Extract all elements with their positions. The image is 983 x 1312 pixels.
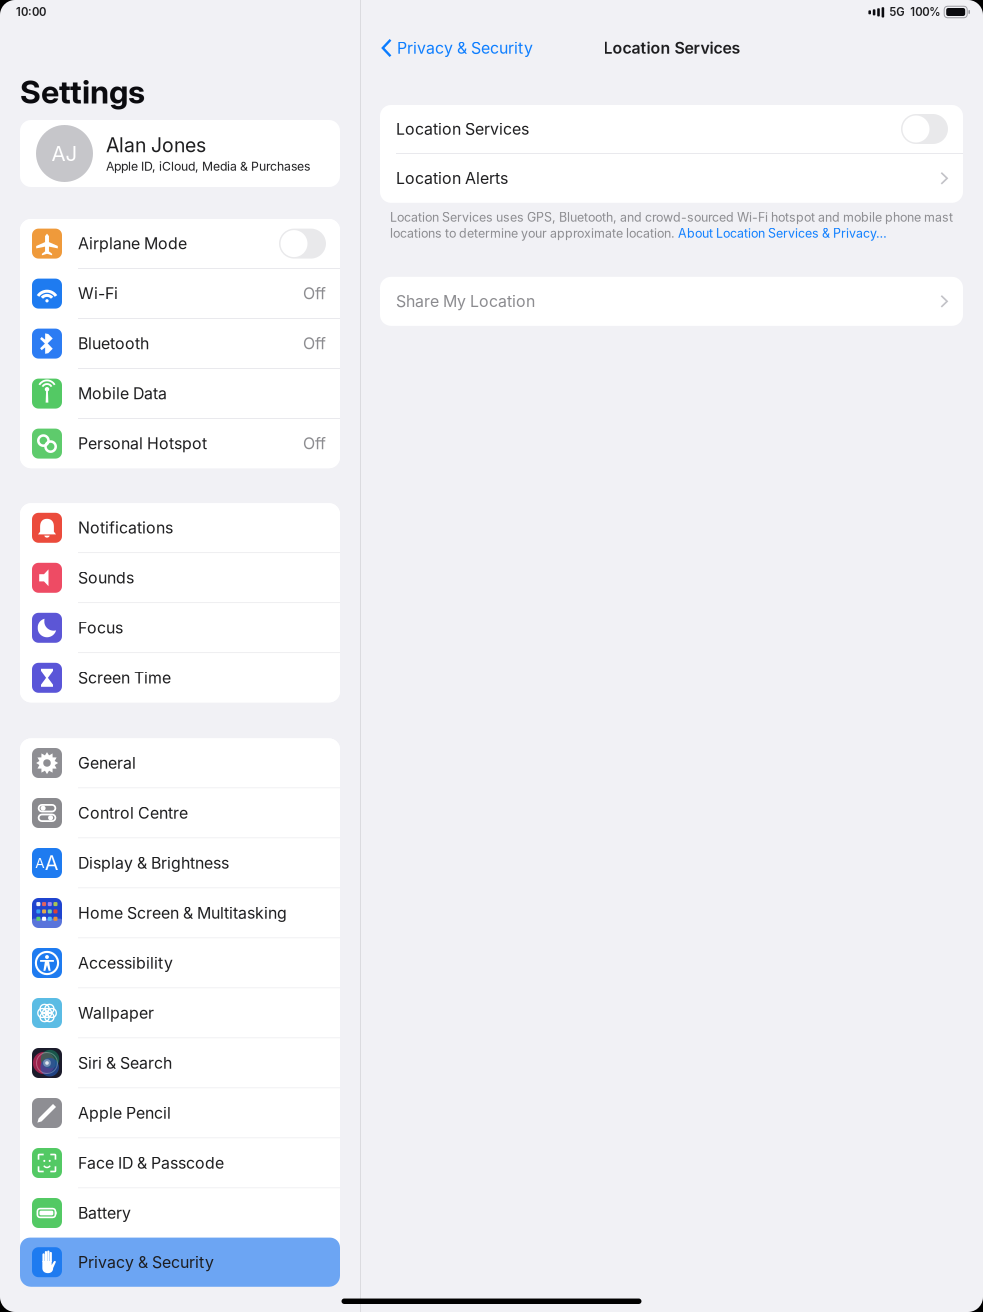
staticText: Location Services — [396, 119, 529, 139]
staticText: Focus — [78, 618, 123, 637]
button[interactable]: Location Alerts — [380, 154, 963, 203]
staticText: Display & Brightness — [78, 853, 229, 873]
staticText: Accessibility — [78, 953, 173, 973]
staticText: Bluetooth — [78, 334, 149, 353]
button[interactable]: Privacy & Security — [20, 1238, 340, 1287]
staticText: 10:00 — [16, 5, 46, 19]
staticText: A — [35, 855, 44, 871]
button[interactable]: Focus — [20, 603, 340, 652]
staticText: Battery — [78, 1203, 131, 1223]
staticText: Off — [303, 334, 326, 353]
staticText: Privacy & Security — [397, 38, 533, 58]
staticText: Location Services uses GPS, Bluetooth, a… — [390, 210, 953, 225]
button[interactable]: Wi-Fi — [20, 269, 340, 318]
staticText: Control Centre — [78, 803, 188, 823]
staticText: Location Alerts — [396, 169, 508, 188]
button[interactable]: Home Screen & Multitasking — [20, 888, 340, 938]
staticText: Sounds — [78, 568, 134, 587]
button[interactable]: Personal Hotspot — [20, 419, 340, 468]
button[interactable]: Airplane Mode — [20, 219, 340, 268]
button[interactable]: Apple Pencil — [20, 1088, 340, 1138]
button[interactable]: Sounds — [20, 553, 340, 602]
staticText: Wi-Fi — [78, 284, 118, 303]
staticText: A — [45, 851, 59, 875]
button[interactable]: Screen Time — [20, 653, 340, 702]
staticText: Home Screen & Multitasking — [78, 903, 287, 923]
button[interactable]: General — [20, 738, 340, 788]
staticText: Alan Jones — [106, 133, 206, 157]
button[interactable]: Bluetooth — [20, 319, 340, 368]
staticText: Airplane Mode — [78, 234, 187, 253]
button[interactable]: Privacy & Security — [377, 28, 537, 68]
staticText: General — [78, 753, 136, 773]
staticText: Settings — [20, 73, 145, 111]
staticText: Face ID & Passcode — [78, 1153, 224, 1173]
staticText: locations to determine your approximate … — [390, 226, 678, 241]
button[interactable]: Siri & Search — [20, 1038, 340, 1088]
staticText: Screen Time — [78, 668, 171, 687]
button[interactable]: Wallpaper — [20, 988, 340, 1038]
button[interactable]: Accessibility — [20, 938, 340, 988]
button[interactable]: Mobile Data — [20, 369, 340, 418]
button[interactable]: Notifications — [20, 503, 340, 552]
staticText: Apple Pencil — [78, 1103, 171, 1123]
staticText: 100% — [910, 5, 940, 19]
staticText: Off — [303, 284, 326, 303]
button[interactable]: Share My Location — [380, 277, 963, 326]
button[interactable]: AJ — [20, 120, 340, 187]
staticText: Personal Hotspot — [78, 434, 207, 453]
button[interactable]: About Location Services & Privacy… — [678, 226, 887, 241]
staticText: 5G — [889, 5, 904, 19]
staticText: Apple ID, iCloud, Media & Purchases — [106, 159, 310, 174]
button[interactable]: A — [20, 838, 340, 888]
staticText: AJ — [51, 141, 77, 166]
staticText: Siri & Search — [78, 1053, 172, 1073]
staticText: Notifications — [78, 518, 173, 537]
button[interactable]: Face ID & Passcode — [20, 1138, 340, 1188]
button[interactable]: Battery — [20, 1188, 340, 1238]
staticText: Share My Location — [396, 292, 535, 311]
staticText: Location Services — [603, 38, 740, 58]
button[interactable]: Control Centre — [20, 788, 340, 838]
staticText: Privacy & Security — [78, 1253, 214, 1272]
staticText: Wallpaper — [78, 1003, 154, 1023]
staticText: Mobile Data — [78, 384, 167, 403]
staticText: Off — [303, 434, 326, 453]
staticText: About Location Services & Privacy… — [678, 226, 887, 241]
